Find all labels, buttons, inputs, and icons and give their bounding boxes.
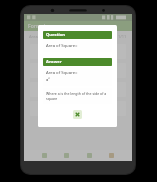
button[interactable]: Answer xyxy=(43,58,112,66)
button[interactable] xyxy=(30,101,126,116)
staticText: a² xyxy=(46,77,50,83)
staticText: Area of Square= xyxy=(46,70,78,76)
staticText: Area of Square= xyxy=(46,43,78,49)
staticText: 1/11 xyxy=(118,34,127,39)
staticText: Question xyxy=(46,32,66,38)
staticText: Answer xyxy=(46,59,62,65)
button[interactable] xyxy=(30,44,126,59)
button[interactable] xyxy=(30,82,126,97)
staticText: Where a is the length of the side of a s… xyxy=(46,91,109,101)
button[interactable]: Tab 4 xyxy=(109,153,114,158)
button[interactable]: Close xyxy=(73,110,82,119)
staticText: Area xyxy=(29,34,38,39)
staticText: Formulas xyxy=(28,23,51,30)
button[interactable] xyxy=(30,63,126,78)
button[interactable]: Question xyxy=(43,31,112,39)
